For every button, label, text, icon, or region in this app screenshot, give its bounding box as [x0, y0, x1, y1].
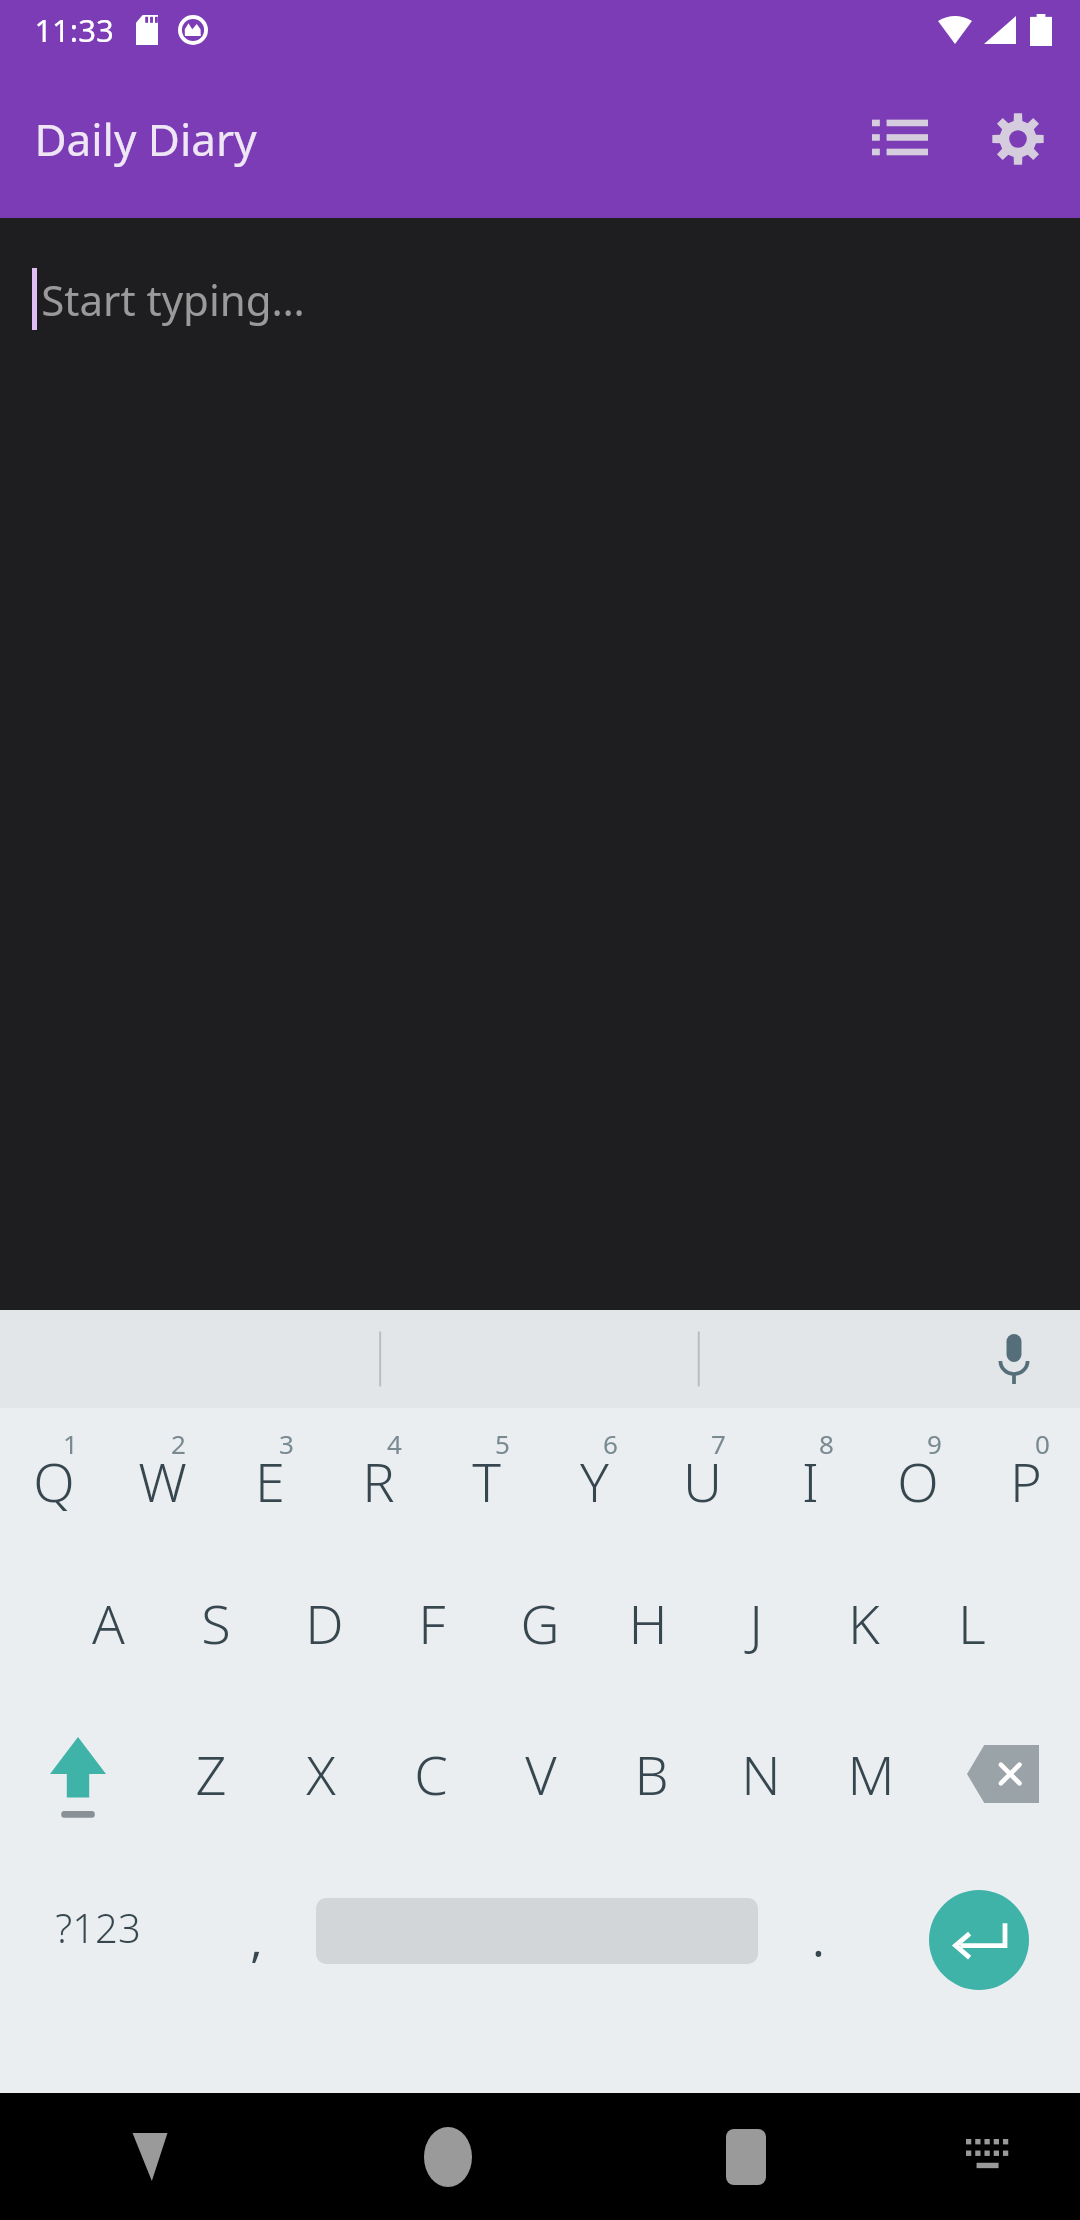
button[interactable]: 4	[324, 1408, 432, 1568]
button[interactable]: G	[486, 1568, 594, 1723]
staticText: 6	[603, 1426, 618, 1461]
staticText: .	[812, 1908, 825, 1971]
button[interactable]: D	[270, 1568, 378, 1723]
staticText: V	[525, 1737, 557, 1811]
staticText: I	[802, 1444, 819, 1518]
button[interactable]: H	[594, 1568, 702, 1723]
staticText: E	[255, 1444, 285, 1518]
button[interactable]: Recents	[597, 2093, 895, 2220]
staticText: Start typing…	[41, 271, 305, 328]
staticText: K	[848, 1586, 880, 1660]
button[interactable]: Voice input	[974, 1319, 1054, 1399]
staticText: U	[683, 1444, 722, 1518]
staticText: A	[92, 1586, 125, 1660]
button[interactable]: 7	[648, 1408, 756, 1568]
staticText: D	[305, 1586, 344, 1660]
staticText: O	[897, 1444, 939, 1518]
staticText: L	[958, 1586, 986, 1660]
staticText: N	[741, 1737, 781, 1811]
staticText: 2	[171, 1426, 186, 1461]
staticText: Q	[33, 1444, 75, 1518]
button[interactable]: K	[810, 1568, 918, 1723]
staticText: X	[306, 1737, 336, 1811]
button[interactable]: N	[706, 1723, 816, 1878]
staticText: S	[201, 1586, 231, 1660]
staticText: Z	[195, 1737, 227, 1811]
button[interactable]: X	[266, 1723, 376, 1878]
button[interactable]: A	[54, 1568, 162, 1723]
button[interactable]: 3	[216, 1408, 324, 1568]
staticText: 3	[279, 1426, 294, 1461]
staticText: R	[362, 1444, 395, 1518]
staticText: ,	[250, 1908, 263, 1971]
button[interactable]: Settings	[970, 91, 1066, 187]
staticText: J	[749, 1586, 763, 1660]
staticText: B	[634, 1737, 669, 1811]
button[interactable]: Shift	[0, 1723, 155, 1878]
staticText: G	[520, 1586, 560, 1660]
button[interactable]: Start typing…	[0, 218, 1080, 1310]
staticText: 7	[711, 1426, 726, 1461]
staticText: W	[138, 1444, 187, 1518]
staticText: T	[472, 1444, 501, 1518]
button[interactable]: Z	[155, 1723, 266, 1878]
staticText: M	[847, 1737, 895, 1811]
button[interactable]: 0	[972, 1408, 1080, 1568]
button[interactable]: 1	[0, 1408, 108, 1568]
button[interactable]: F	[378, 1568, 486, 1723]
button[interactable]: V	[486, 1723, 596, 1878]
staticText: H	[628, 1586, 668, 1660]
button[interactable]: .	[758, 1878, 878, 2093]
button[interactable]: J	[702, 1568, 810, 1723]
button[interactable]: 2	[108, 1408, 216, 1568]
button[interactable]: L	[918, 1568, 1026, 1723]
staticText: ?123	[55, 1900, 141, 1954]
button[interactable]: 8	[756, 1408, 864, 1568]
button[interactable]: C	[376, 1723, 486, 1878]
staticText: 11:33	[34, 9, 114, 51]
button[interactable]: B	[596, 1723, 706, 1878]
button[interactable]: Backspace	[926, 1723, 1080, 1878]
button[interactable]: ,	[196, 1878, 316, 2093]
staticText: 8	[819, 1426, 834, 1461]
button[interactable]: S	[162, 1568, 270, 1723]
button[interactable]: 9	[864, 1408, 972, 1568]
button[interactable]: Entries list	[852, 91, 948, 187]
button[interactable]: M	[816, 1723, 926, 1878]
staticText: 5	[495, 1426, 510, 1461]
button[interactable]: Home	[299, 2093, 597, 2220]
button[interactable]: Back	[0, 2093, 299, 2220]
button[interactable]: Switch keyboard	[895, 2093, 1080, 2220]
staticText: 1	[63, 1426, 78, 1461]
button[interactable]: ?123	[0, 1878, 196, 2093]
staticText: 9	[927, 1426, 942, 1461]
staticText: C	[414, 1737, 448, 1811]
button[interactable]: 5	[432, 1408, 540, 1568]
staticText: 0	[1035, 1426, 1050, 1461]
button[interactable]	[316, 1878, 758, 2093]
staticText: Daily Diary	[34, 109, 257, 169]
staticText: F	[418, 1586, 446, 1660]
staticText: 4	[387, 1426, 402, 1461]
button[interactable]: 6	[540, 1408, 648, 1568]
staticText: Y	[580, 1444, 609, 1518]
button[interactable]: Enter	[878, 1878, 1080, 2093]
staticText: P	[1010, 1444, 1042, 1518]
